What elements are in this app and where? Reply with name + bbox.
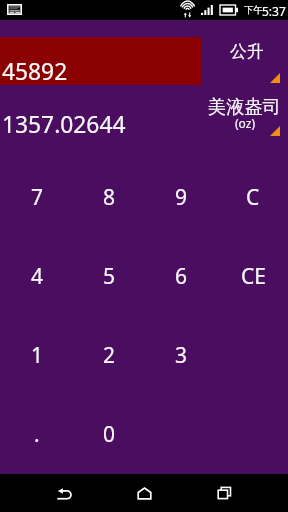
staticText: 美液盎司 xyxy=(208,95,281,118)
button[interactable]: 6 xyxy=(145,237,217,316)
button[interactable]: 45892 xyxy=(0,37,202,85)
staticText: 3 xyxy=(175,341,188,370)
button[interactable]: 1 xyxy=(1,316,73,395)
button[interactable]: 7 xyxy=(1,158,73,237)
staticText: 9 xyxy=(175,183,188,212)
staticText: 1357.02644 xyxy=(2,109,126,140)
staticText: 下午 xyxy=(244,4,263,16)
staticText: 8 xyxy=(103,183,116,212)
button[interactable]: 2 xyxy=(73,316,145,395)
staticText: 4 xyxy=(31,262,44,291)
button[interactable]: 4 xyxy=(1,237,73,316)
button[interactable]: 5 xyxy=(73,237,145,316)
staticText: (oz) xyxy=(235,115,255,131)
button[interactable]: Home xyxy=(124,474,164,512)
button[interactable]: CE xyxy=(217,237,288,316)
staticText: CE xyxy=(241,262,266,291)
button[interactable]: 0 xyxy=(73,395,145,474)
button[interactable]: 9 xyxy=(145,158,217,237)
staticText: . xyxy=(34,420,40,449)
staticText: 2 xyxy=(103,341,116,370)
button[interactable]: C xyxy=(217,158,288,237)
staticText: C xyxy=(246,183,260,212)
staticText: 45892 xyxy=(2,56,68,87)
button[interactable]: 8 xyxy=(73,158,145,237)
staticText: 5:37 xyxy=(262,3,286,19)
staticText: 5 xyxy=(103,262,116,291)
button[interactable]: 美液盎司 xyxy=(202,88,288,140)
staticText: 公升 xyxy=(230,41,264,62)
staticText: 1 xyxy=(31,341,44,370)
button[interactable]: Recent apps xyxy=(204,474,244,512)
button[interactable]: 公升 xyxy=(202,30,288,85)
button[interactable]: Back xyxy=(44,474,84,512)
staticText: 7 xyxy=(31,183,44,212)
staticText: 0 xyxy=(103,420,116,449)
staticText: 6 xyxy=(175,262,188,291)
button[interactable]: . xyxy=(1,395,73,474)
button[interactable]: 3 xyxy=(145,316,217,395)
